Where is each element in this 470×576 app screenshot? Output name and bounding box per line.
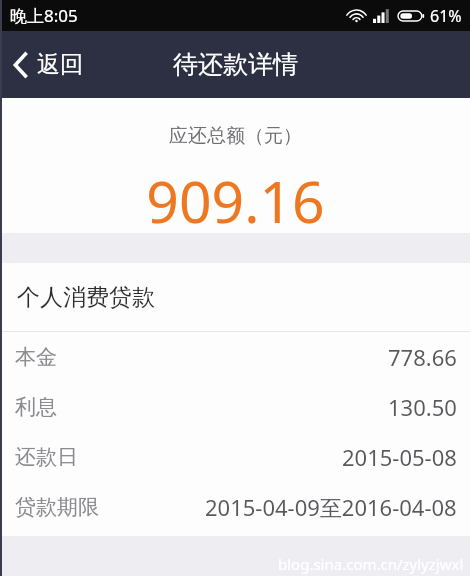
staticText: 2015-04-09至2016-04-08: [205, 492, 457, 522]
staticText: 本金: [15, 344, 57, 370]
staticText: 还款日: [15, 444, 78, 470]
staticText: 待还款详情: [173, 49, 298, 80]
staticText: 返回: [37, 50, 83, 79]
staticText: 贷款期限: [15, 494, 99, 520]
staticText: 应还总额（元）: [169, 124, 302, 148]
staticText: blog.sina.com.cn/zylyzjwxl: [278, 554, 464, 574]
button[interactable]: 返回: [0, 42, 97, 87]
staticText: 61%: [430, 5, 462, 27]
staticText: 个人消费贷款: [17, 283, 155, 312]
staticText: 130.50: [388, 392, 457, 422]
staticText: 909.16: [146, 162, 325, 233]
staticText: 晚上8:05: [10, 4, 78, 27]
button[interactable]: 还款日: [0, 432, 470, 482]
staticText: 778.66: [388, 342, 457, 372]
staticText: 利息: [15, 394, 57, 420]
button[interactable]: 贷款期限: [0, 482, 470, 532]
button[interactable]: 利息: [0, 382, 470, 432]
staticText: 2015-05-08: [342, 442, 457, 472]
button[interactable]: 本金: [0, 332, 470, 382]
